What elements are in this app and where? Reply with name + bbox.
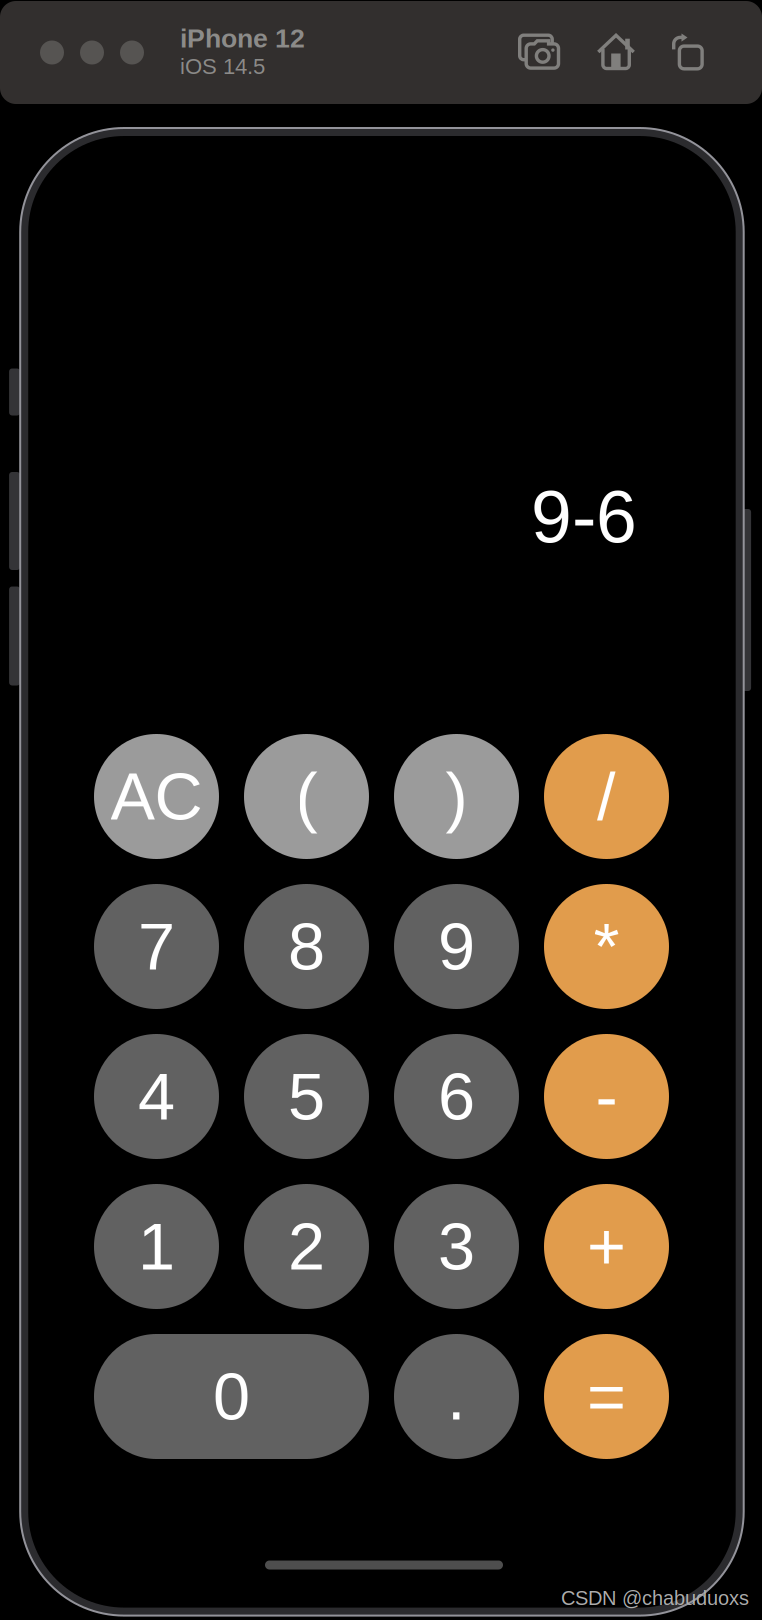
button[interactable]: Rotate [672,33,703,69]
staticText: = [587,1359,626,1434]
staticText: AC [110,759,202,834]
button[interactable]: / [544,734,669,859]
button[interactable]: 3 [394,1184,519,1309]
button[interactable]: ( [244,734,369,859]
staticText: / [597,759,616,834]
staticText: 3 [438,1209,475,1284]
button[interactable]: 5 [244,1034,369,1159]
button[interactable]: ) [394,734,519,859]
staticText: 4 [138,1059,175,1134]
button[interactable]: AC [94,734,219,859]
staticText: iOS 14.5 [180,54,265,79]
staticText: CSDN @chabuduoxs [561,1587,749,1609]
staticText: 5 [288,1059,325,1134]
button[interactable]: - [544,1034,669,1159]
staticText: + [587,1209,626,1284]
button[interactable]: Screenshot [518,33,560,69]
button[interactable]: 8 [244,884,369,1009]
button[interactable]: + [544,1184,669,1309]
button[interactable]: 6 [394,1034,519,1159]
staticText: . [447,1359,466,1434]
staticText: 0 [213,1359,250,1434]
staticText: * [593,909,619,984]
staticText: 7 [138,909,175,984]
button[interactable]: 7 [94,884,219,1009]
staticText: - [595,1059,617,1134]
button[interactable]: * [544,884,669,1009]
staticText: 2 [288,1209,325,1284]
button[interactable]: = [544,1334,669,1459]
button[interactable]: 1 [94,1184,219,1309]
button[interactable]: 4 [94,1034,219,1159]
button[interactable]: . [394,1334,519,1459]
button[interactable]: 2 [244,1184,369,1309]
staticText: 9 [438,909,475,984]
staticText: iPhone 12 [180,23,305,53]
staticText: 6 [438,1059,475,1134]
staticText: ) [445,759,467,834]
staticText: 9-6 [531,476,637,558]
button[interactable]: 0 [94,1334,369,1459]
button[interactable]: Home [596,33,635,69]
button[interactable]: 9 [394,884,519,1009]
staticText: 8 [288,909,325,984]
staticText: ( [295,759,317,834]
staticText: 1 [138,1209,175,1284]
